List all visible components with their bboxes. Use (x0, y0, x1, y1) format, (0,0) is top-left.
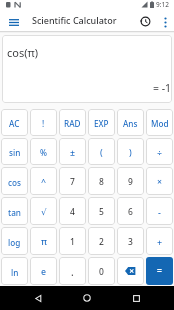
button[interactable] (160, 17, 170, 27)
button[interactable]: = (146, 257, 173, 285)
staticText: sin (9, 147, 21, 158)
staticText: 8 (99, 176, 104, 188)
staticText: = -1 (153, 81, 172, 95)
button[interactable] (28, 288, 48, 308)
staticText: 9 (128, 176, 133, 188)
staticText: × (157, 176, 163, 188)
staticText: 9:12 (156, 0, 169, 9)
staticText: 5 (99, 206, 104, 218)
button[interactable]: ^ (30, 167, 57, 195)
button[interactable]: ÷ (146, 138, 173, 165)
button[interactable]: 1 (59, 227, 86, 255)
staticText: ) (129, 147, 132, 159)
button[interactable]: EXP (88, 109, 115, 136)
staticText: EXP (94, 118, 109, 129)
staticText: + (157, 236, 163, 248)
button[interactable]: ! (30, 109, 57, 136)
staticText: Ans (123, 118, 138, 129)
button[interactable]: 5 (88, 197, 115, 225)
button[interactable]: % (30, 138, 57, 165)
button[interactable]: 6 (117, 197, 144, 225)
button[interactable]: ) (117, 138, 144, 165)
staticText: . (71, 265, 74, 279)
button[interactable]: 3 (117, 227, 144, 255)
staticText: Scientific Calculator (32, 14, 117, 26)
button[interactable]: e (30, 257, 57, 285)
button[interactable]: sin (1, 138, 28, 165)
staticText: cos (8, 177, 22, 188)
button[interactable] (117, 257, 144, 285)
button[interactable]: π (30, 227, 57, 255)
button[interactable]: 4 (59, 197, 86, 225)
staticText: √ (41, 207, 47, 217)
staticText: π (41, 236, 47, 248)
staticText: 6 (128, 206, 133, 218)
button[interactable]: 8 (88, 167, 115, 195)
button[interactable]: 0 (88, 257, 115, 285)
button[interactable]: + (146, 227, 173, 255)
button[interactable]: √ (30, 197, 57, 225)
staticText: ÷ (157, 147, 163, 159)
button[interactable] (138, 14, 152, 28)
staticText: 1 (70, 236, 75, 248)
staticText: 7 (70, 176, 75, 188)
staticText: ± (70, 147, 76, 159)
staticText: RAD (64, 118, 81, 129)
button[interactable]: - (146, 197, 173, 225)
button[interactable]: Ans (117, 109, 144, 136)
button[interactable]: ln (1, 257, 28, 285)
button[interactable]: RAD (59, 109, 86, 136)
staticText: ln (11, 267, 19, 278)
button[interactable]: × (146, 167, 173, 195)
staticText: e (41, 266, 47, 278)
staticText: 2 (99, 236, 104, 248)
staticText: 4 (70, 206, 75, 218)
button[interactable] (126, 288, 146, 308)
button[interactable]: ± (59, 138, 86, 165)
staticText: ^ (41, 176, 47, 188)
staticText: ( (100, 147, 103, 159)
staticText: AC (9, 118, 20, 129)
button[interactable]: cos (1, 167, 28, 195)
button[interactable]: 9 (117, 167, 144, 195)
staticText: log (8, 237, 21, 248)
button[interactable] (8, 14, 19, 30)
staticText: - (158, 206, 161, 218)
staticText: 0 (99, 266, 104, 278)
button[interactable]: ( (88, 138, 115, 165)
staticText: % (40, 147, 47, 158)
staticText: cos(π) (7, 45, 38, 60)
button[interactable]: AC (1, 109, 28, 136)
button[interactable]: log (1, 227, 28, 255)
staticText: Mod (151, 118, 169, 129)
button[interactable]: 7 (59, 167, 86, 195)
staticText: 3 (128, 236, 133, 248)
button[interactable]: 2 (88, 227, 115, 255)
staticText: tan (8, 207, 21, 218)
button[interactable]: tan (1, 197, 28, 225)
button[interactable]: Mod (146, 109, 173, 136)
button[interactable] (77, 288, 97, 308)
staticText: = (157, 265, 162, 277)
staticText: ! (42, 118, 45, 129)
button[interactable]: . (59, 257, 86, 285)
